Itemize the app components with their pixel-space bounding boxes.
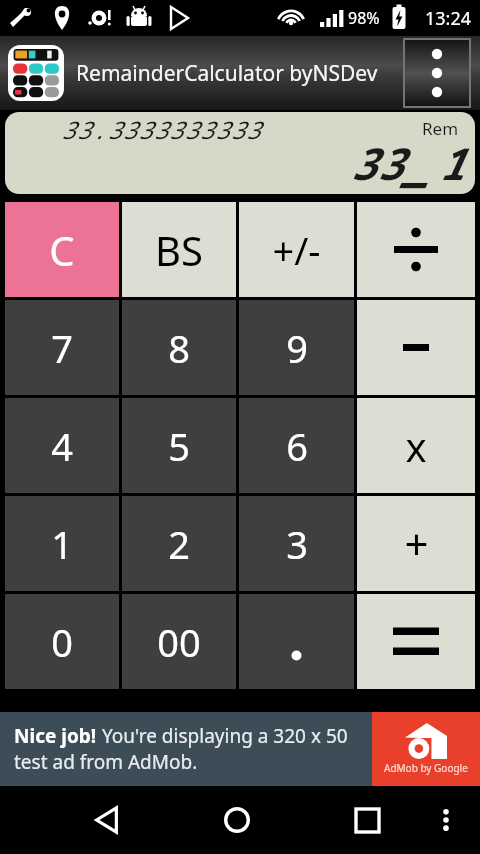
button[interactable]: C (5, 202, 119, 297)
button[interactable]: AdMob by Google (372, 712, 480, 786)
staticText: Nice job! (14, 723, 102, 749)
staticText: 4 (51, 420, 73, 472)
button[interactable]: 6 (239, 398, 354, 493)
button[interactable]: 3 (239, 496, 354, 591)
button[interactable]: 2 (122, 496, 236, 591)
staticText: 33.3333333333 (61, 113, 262, 146)
staticText: + (404, 515, 429, 572)
staticText: BS (155, 223, 203, 277)
staticText: AdMob by Google (384, 761, 468, 775)
button[interactable]: Divide (357, 202, 475, 297)
staticText: 13:24 (425, 6, 472, 31)
button[interactable]: 1 (5, 496, 119, 591)
staticText: +/- (272, 224, 321, 276)
staticText: 33_ (350, 133, 430, 193)
staticText: Rem (422, 117, 459, 140)
staticText: x (405, 419, 427, 473)
button[interactable]: Back (78, 791, 136, 849)
button[interactable]: + (357, 496, 475, 591)
button[interactable]: 9 (239, 300, 354, 395)
button[interactable]: Recent apps (338, 791, 396, 849)
staticText: RemainderCalculator byNSDev (76, 59, 378, 88)
staticText: 00 (157, 616, 201, 668)
button[interactable]: Decimal point (239, 594, 354, 689)
staticText: 7 (51, 322, 73, 374)
staticText: test ad from AdMob. (14, 749, 198, 775)
staticText: 9 (286, 322, 308, 374)
staticText: 1 (438, 133, 465, 193)
button[interactable]: +/- (239, 202, 354, 297)
button[interactable]: 5 (122, 398, 236, 493)
staticText: 0 (51, 616, 73, 668)
staticText: 1 (51, 518, 73, 570)
staticText: 3 (286, 518, 308, 570)
staticText: 98% (348, 7, 380, 29)
button[interactable]: 4 (5, 398, 119, 493)
staticText: 2 (168, 518, 190, 570)
button[interactable]: Nice job! (0, 712, 372, 786)
staticText: 6 (286, 420, 308, 472)
staticText: 8 (168, 322, 190, 374)
button[interactable]: x (357, 398, 475, 493)
staticText: You're displaying a 320 x 50 (102, 723, 348, 749)
button[interactable]: 00 (122, 594, 236, 689)
button[interactable]: Menu (422, 796, 470, 844)
button[interactable]: More options (404, 39, 470, 107)
button[interactable]: Home (208, 791, 266, 849)
button[interactable]: 0 (5, 594, 119, 689)
button[interactable]: Minus (357, 300, 475, 395)
button[interactable]: BS (122, 202, 236, 297)
button[interactable]: Equals (357, 594, 475, 689)
staticText: C (49, 223, 75, 277)
staticText: 5 (168, 420, 190, 472)
button[interactable]: 8 (122, 300, 236, 395)
button[interactable]: 7 (5, 300, 119, 395)
